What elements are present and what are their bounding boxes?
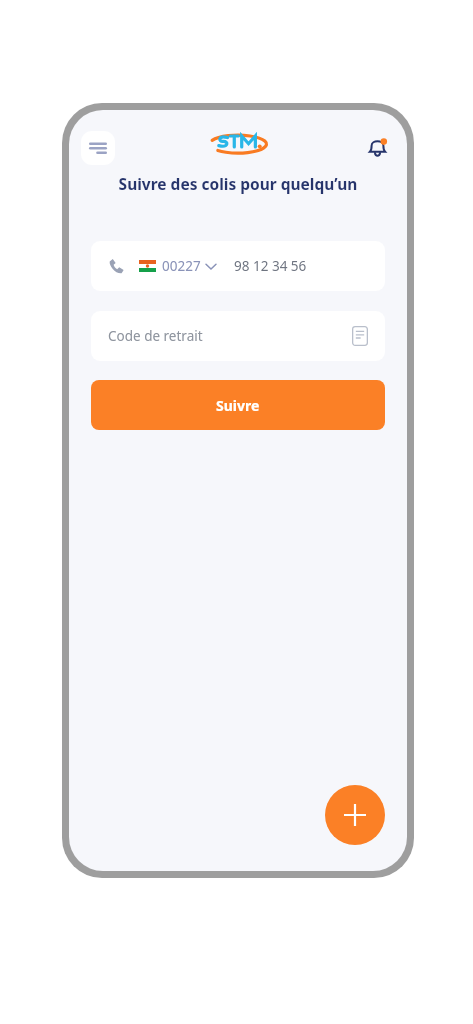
button[interactable]: Notifications: [361, 131, 393, 163]
button[interactable]: Menu: [81, 131, 115, 165]
staticText: Suivre: [216, 396, 260, 415]
button[interactable]: 00227: [91, 241, 385, 291]
button[interactable]: Code de retrait: [91, 311, 385, 361]
staticText: Suivre des colis pour quelqu’un: [85, 173, 391, 194]
staticText: Code de retrait: [108, 327, 352, 345]
button[interactable]: Add: [325, 785, 385, 845]
button[interactable]: Suivre: [91, 380, 385, 430]
staticText: 00227: [162, 257, 201, 275]
staticText: 98 12 34 56: [234, 257, 307, 275]
